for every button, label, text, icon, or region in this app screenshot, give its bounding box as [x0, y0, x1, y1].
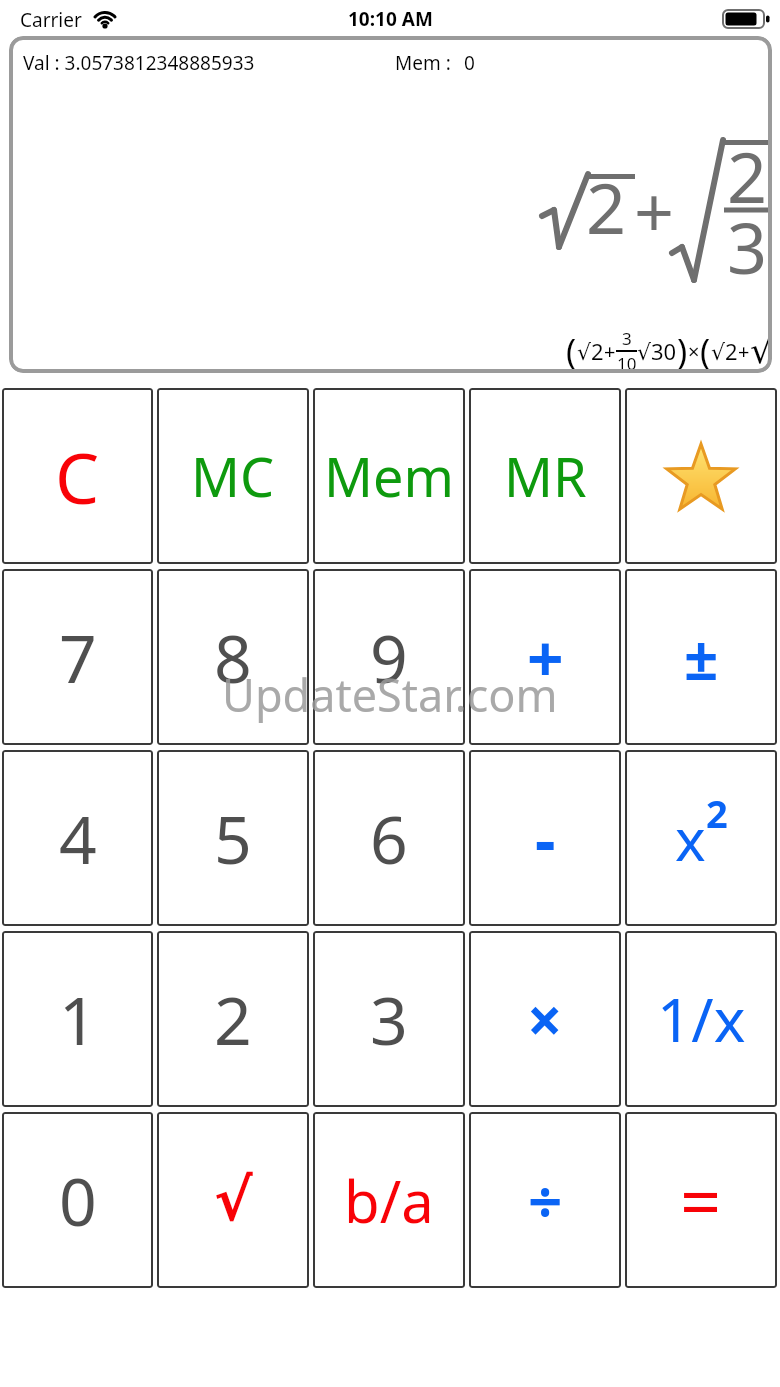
staticText: +	[527, 614, 564, 701]
staticText: 2	[214, 974, 252, 1064]
button[interactable]: =	[625, 1112, 777, 1288]
staticText: +	[738, 338, 750, 365]
staticText: ±	[684, 616, 719, 698]
button[interactable]: b/a	[313, 1112, 465, 1288]
staticText: )	[677, 328, 688, 373]
button[interactable]: √	[157, 1112, 309, 1288]
button[interactable]: 9	[313, 569, 465, 745]
staticText: 0	[464, 50, 475, 76]
button[interactable]: +	[469, 569, 621, 745]
staticText: x	[675, 799, 706, 878]
staticText: 3	[727, 199, 768, 294]
staticText: ×	[688, 338, 700, 365]
staticText: b/a	[344, 1161, 434, 1240]
button[interactable]	[625, 388, 777, 564]
staticText: 5	[214, 793, 252, 883]
button[interactable]: 1	[2, 931, 153, 1107]
staticText: 10	[617, 352, 637, 373]
staticText: MR	[504, 439, 587, 513]
staticText: -	[535, 795, 556, 882]
staticText: √2	[711, 336, 738, 366]
staticText: ÷	[528, 1159, 563, 1241]
staticText: 2	[706, 787, 728, 839]
button[interactable]: MR	[469, 388, 621, 564]
button[interactable]: Mem	[313, 388, 465, 564]
staticText: 1/x	[657, 978, 746, 1060]
staticText: 7	[59, 612, 97, 702]
staticText: (	[700, 328, 711, 373]
button[interactable]: 8	[157, 569, 309, 745]
staticText: 1	[59, 974, 97, 1064]
staticText: 6	[370, 793, 408, 883]
staticText: ×	[527, 977, 563, 1061]
staticText: UpdateStar.com	[222, 664, 558, 725]
button[interactable]: ±	[625, 569, 777, 745]
button[interactable]: 3	[313, 931, 465, 1107]
staticText: 10:10 AM	[348, 6, 433, 32]
button[interactable]: ×	[469, 931, 621, 1107]
staticText: +	[604, 338, 616, 365]
button[interactable]: x	[625, 750, 777, 926]
staticText: 4	[59, 793, 97, 883]
button[interactable]: ÷	[469, 1112, 621, 1288]
button[interactable]: 2	[157, 931, 309, 1107]
button[interactable]: -	[469, 750, 621, 926]
staticText: Mem :	[395, 50, 451, 76]
staticText: √	[750, 330, 772, 372]
button[interactable]: C	[2, 388, 153, 564]
staticText: 2	[727, 128, 768, 223]
button[interactable]: 6	[313, 750, 465, 926]
staticText: 3	[622, 327, 632, 350]
staticText: Val : 3.0573812348885933	[23, 50, 255, 76]
staticText: 2	[586, 159, 627, 254]
staticText: 8	[214, 612, 252, 702]
button[interactable]: 4	[2, 750, 153, 926]
button[interactable]: 0	[2, 1112, 153, 1288]
button[interactable]: 1/x	[625, 931, 777, 1107]
staticText: (	[566, 328, 577, 373]
staticText: MC	[191, 439, 275, 513]
button[interactable]: 7	[2, 569, 153, 745]
staticText: +	[634, 163, 675, 258]
staticText: √	[214, 1166, 253, 1234]
staticText: C	[55, 429, 100, 524]
staticText: =	[680, 1151, 722, 1249]
staticText: 9	[370, 612, 408, 702]
staticText: 3	[370, 974, 408, 1064]
staticText: Carrier	[20, 7, 82, 33]
staticText: √30	[637, 336, 677, 366]
staticText: 0	[59, 1155, 97, 1245]
staticText: Mem	[324, 439, 454, 513]
staticText: √2	[577, 336, 604, 366]
button[interactable]: MC	[157, 388, 309, 564]
button[interactable]: 5	[157, 750, 309, 926]
